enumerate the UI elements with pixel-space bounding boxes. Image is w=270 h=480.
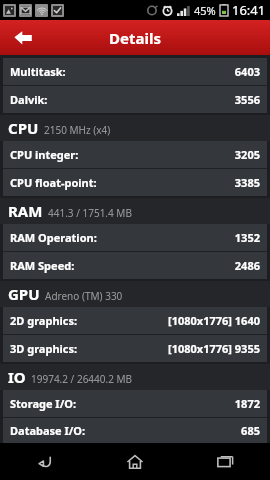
staticText: Database I/O: xyxy=(10,423,86,438)
button[interactable]: Dalvik: xyxy=(3,86,267,113)
staticText: 19974.2 / 26440.2 MB xyxy=(31,372,133,386)
staticText: 3D graphics: xyxy=(10,341,78,356)
staticText: 3385 xyxy=(234,175,260,190)
button[interactable]: RAM Operation: xyxy=(3,224,267,251)
button[interactable]: Back xyxy=(0,20,46,55)
staticText: Multitask: xyxy=(10,64,66,79)
button[interactable]: Storage I/O: xyxy=(3,390,267,417)
staticText: 1872 xyxy=(234,396,260,411)
staticText: 2486 xyxy=(234,258,260,273)
staticText: 685 xyxy=(241,423,260,438)
staticText: Dalvik: xyxy=(10,92,48,107)
button[interactable]: CPU integer: xyxy=(3,141,267,168)
staticText: RAM Speed: xyxy=(10,258,75,273)
staticText: RAM xyxy=(8,201,43,221)
staticText: RAM Operation: xyxy=(10,230,97,245)
staticText: 16:41 xyxy=(232,1,266,19)
button[interactable]: Database I/O: xyxy=(3,418,267,443)
button[interactable]: Recent apps xyxy=(180,443,270,480)
staticText: Storage I/O: xyxy=(10,396,77,411)
button[interactable]: CPU float-point: xyxy=(3,169,267,196)
staticText: Adreno (TM) 330 xyxy=(45,289,123,303)
staticText: 45% xyxy=(194,3,216,18)
button[interactable]: 2D graphics: xyxy=(3,307,267,334)
staticText: [1080x1776] 9355 xyxy=(167,341,260,356)
button[interactable]: Home xyxy=(90,443,180,480)
staticText: IO xyxy=(8,367,26,387)
staticText: Details xyxy=(109,28,161,48)
staticText: CPU float-point: xyxy=(10,175,97,190)
staticText: CPU integer: xyxy=(10,147,79,162)
button[interactable]: 3D graphics: xyxy=(3,335,267,362)
staticText: 1352 xyxy=(234,230,260,245)
staticText: GPU xyxy=(8,284,40,304)
button[interactable]: RAM Speed: xyxy=(3,252,267,279)
staticText: 6403 xyxy=(234,64,260,79)
staticText: 2150 MHz (x4) xyxy=(44,123,111,137)
staticText: 3205 xyxy=(234,147,260,162)
staticText: 441.3 / 1751.4 MB xyxy=(48,206,132,220)
button[interactable]: Multitask: xyxy=(3,58,267,85)
staticText: [1080x1776] 1640 xyxy=(167,313,260,328)
staticText: 2D graphics: xyxy=(10,313,78,328)
button[interactable]: Back xyxy=(0,443,90,480)
staticText: 3556 xyxy=(234,92,260,107)
staticText: CPU xyxy=(8,118,39,138)
